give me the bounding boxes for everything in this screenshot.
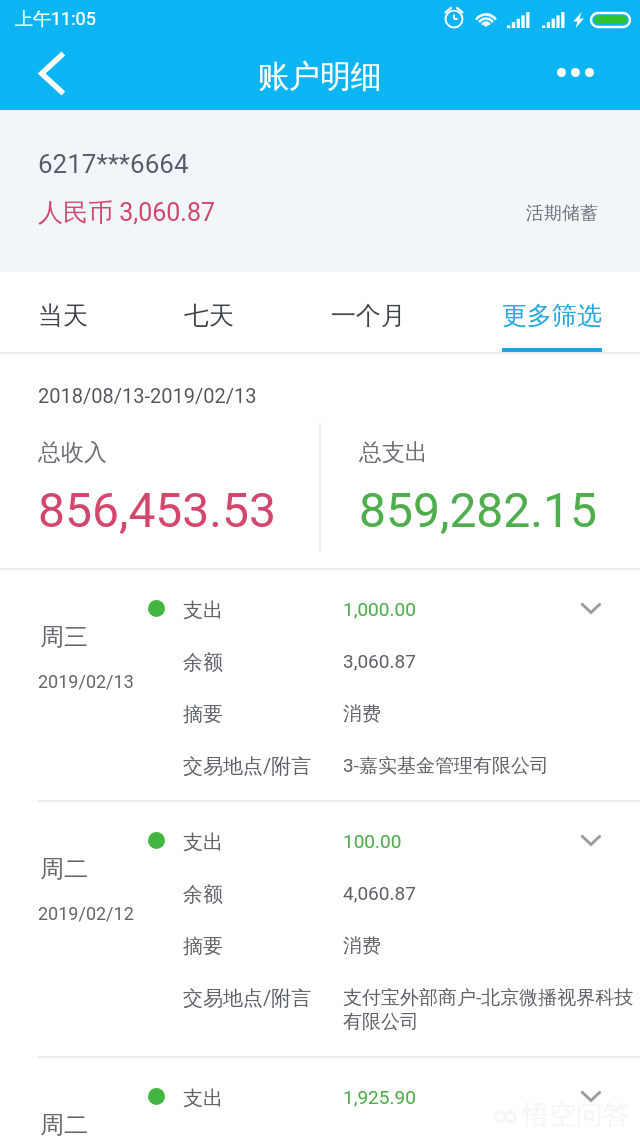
staticText: 2019/02/12 <box>38 903 134 924</box>
staticText: 当天 <box>38 300 88 331</box>
staticText: 账户明细 <box>258 57 382 96</box>
button[interactable]: 七天 <box>184 272 234 354</box>
button[interactable]: 周三 <box>0 570 640 800</box>
staticText: 交易地点/附言 <box>183 754 312 779</box>
button[interactable]: 周二 <box>0 802 640 1056</box>
staticText: 周二 <box>40 1110 88 1138</box>
staticText: 3,060.87 <box>343 650 640 672</box>
staticText: 2018/08/13-2019/02/13 <box>38 384 257 407</box>
staticText: 支出 <box>183 1086 223 1111</box>
staticText: 更多筛选 <box>502 300 602 331</box>
button[interactable]: 更多筛选 <box>502 272 602 354</box>
staticText: 摘要 <box>183 934 223 959</box>
staticText: 交易地点/附言 <box>183 986 312 1011</box>
staticText: 2019/02/13 <box>38 671 134 692</box>
button[interactable]: 当天 <box>38 272 88 354</box>
staticText: 支出 <box>183 830 223 855</box>
staticText: 1,925.90 <box>343 1086 640 1108</box>
staticText: 3-嘉实基金管理有限公司 <box>343 754 640 778</box>
staticText: 摘要 <box>183 702 223 727</box>
staticText: 6217***6664 <box>38 149 189 179</box>
staticText: 周二 <box>40 854 88 884</box>
staticText: 消费 <box>343 702 640 726</box>
staticText: 余额 <box>183 882 223 907</box>
staticText: 856,453.53 <box>38 482 276 538</box>
staticText: 支出 <box>183 598 223 623</box>
staticText: 4,060.87 <box>343 882 640 904</box>
button[interactable]: Back <box>0 44 100 110</box>
staticText: 悟空问答 <box>522 1098 630 1132</box>
staticText: 支付宝外部商户-北京微播视界科技有限公司 <box>343 986 640 1034</box>
staticText: 活期储蓄 <box>526 202 598 225</box>
staticText: 周三 <box>40 622 88 652</box>
button[interactable]: 一个月 <box>331 272 406 354</box>
staticText: 上午11:05 <box>15 8 96 31</box>
button[interactable]: More options <box>557 39 594 105</box>
button[interactable]: 周二 <box>0 1058 640 1138</box>
staticText: 1,000.00 <box>343 598 640 620</box>
staticText: 七天 <box>184 300 234 331</box>
staticText: 余额 <box>183 650 223 675</box>
staticText: 一个月 <box>331 300 406 331</box>
staticText: 人民币 3,060.87 <box>38 197 216 228</box>
staticText: 859,282.15 <box>359 482 597 538</box>
staticText: 消费 <box>343 934 640 958</box>
staticText: 总支出 <box>359 438 428 467</box>
staticText: 总收入 <box>38 438 107 467</box>
staticText: 100.00 <box>343 830 640 852</box>
